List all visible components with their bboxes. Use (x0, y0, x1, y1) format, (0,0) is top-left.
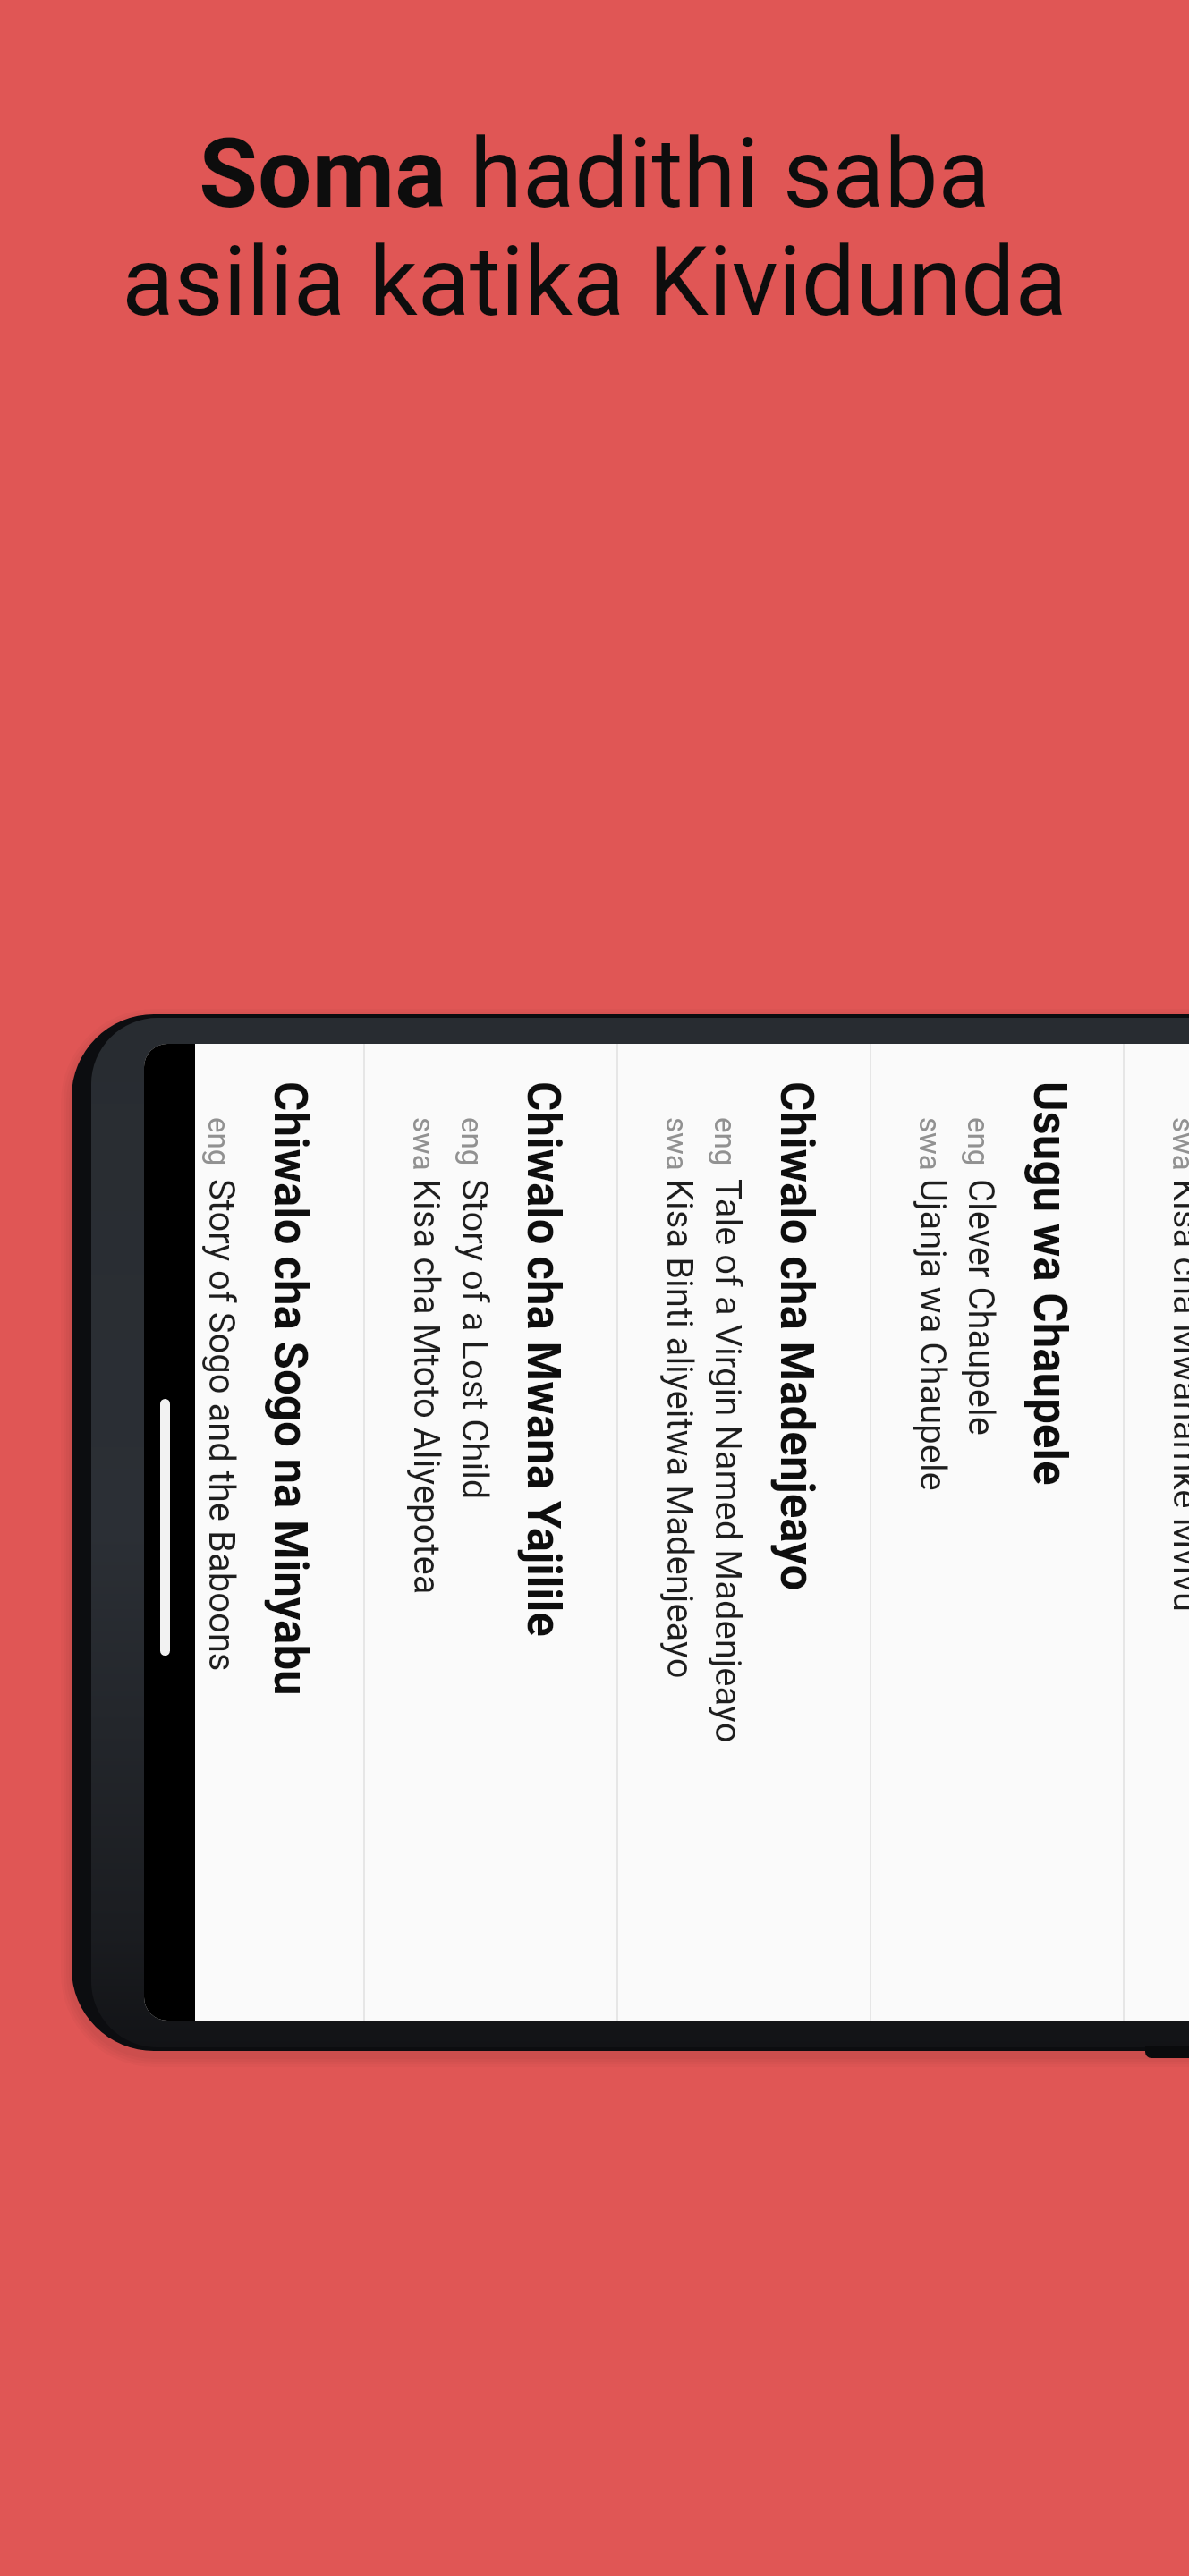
staticText: Chiwalo cha Madenjeayo (769, 1081, 823, 1591)
staticText: eng (961, 1117, 996, 1166)
staticText: Tale of a Virgin Named Madenjeayo (707, 1179, 749, 1743)
staticText: eng (454, 1117, 489, 1166)
staticText: Story of a Lost Child (454, 1179, 496, 1500)
staticText: swa (659, 1117, 694, 1171)
button[interactable]: Usugu wa Chaupele (871, 1044, 1125, 2021)
staticText: Chiwalo cha Sogo na Minyabu (263, 1081, 317, 1696)
button[interactable]: Chiwalo cha Mwanamke Mvivu (1125, 1044, 1189, 2021)
staticText: Clever Chaupele (960, 1179, 1002, 1436)
staticText: swa (913, 1117, 947, 1171)
other: Home gesture navigation bar (144, 1044, 195, 2021)
staticText: Kisa Binti aliyeitwa Madenjeayo (658, 1179, 701, 1679)
staticText: eng (201, 1117, 236, 1166)
staticText: Kisa cha Mtoto Aliyepotea (405, 1179, 447, 1595)
staticText: swa (1166, 1117, 1189, 1171)
button[interactable]: Chiwalo cha Madenjeayo (618, 1044, 871, 2021)
staticText: Kisa cha Mwanamke Mvivu (1165, 1179, 1189, 1612)
button[interactable]: Chiwalo cha Sogo na Minyabu (144, 1044, 365, 2021)
staticText: eng (708, 1117, 743, 1166)
staticText: Usugu wa Chaupele (1023, 1081, 1076, 1486)
button[interactable]: Chiwalo cha Mwana Yajilile (365, 1044, 618, 2021)
staticText: Chiwalo cha Mwana Yajilile (516, 1081, 570, 1637)
staticText: Soma hadithi saba asilia katika Kividund… (50, 118, 1139, 338)
staticText: swa (406, 1117, 441, 1171)
staticText: Story of Sogo and the Baboons (200, 1179, 242, 1672)
staticText: Kisa cha Sogo na Minyabu (152, 1179, 194, 1598)
staticText: Ujanja wa Chaupele (912, 1179, 954, 1491)
